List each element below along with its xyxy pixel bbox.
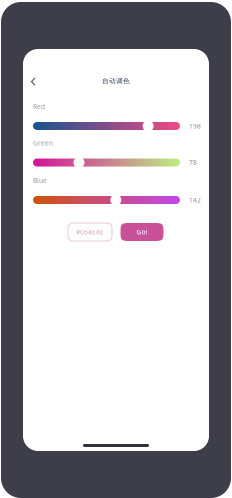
staticText: Green <box>33 139 53 147</box>
staticText: 142 <box>189 196 201 204</box>
staticText: #C64E8E <box>76 228 104 236</box>
staticText: 198 <box>189 122 201 130</box>
button[interactable]: Go! <box>120 223 163 241</box>
staticText: Go! <box>136 228 147 236</box>
button[interactable]: Back <box>25 72 41 90</box>
staticText: Red <box>33 102 45 111</box>
staticText: 78 <box>189 158 197 167</box>
staticText: 自动调色 <box>102 77 130 85</box>
staticText: Blue <box>33 176 47 185</box>
button[interactable]: #C64E8E <box>68 223 112 241</box>
